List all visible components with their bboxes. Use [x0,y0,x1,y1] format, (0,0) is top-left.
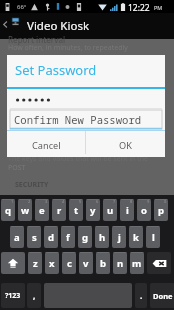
staticText: The keys and values that will be sent in… [8,154,149,164]
button[interactable]: x [45,252,59,274]
staticText: 66° [17,3,27,11]
staticText: Done [153,291,173,301]
staticText: 2 [28,199,31,204]
staticText: 3 [45,199,48,204]
staticText: e [39,204,45,217]
staticText: 9 [147,199,150,204]
staticText: 12:22 [128,2,150,14]
staticText: . [140,290,143,301]
staticText: 1 [11,199,14,204]
button[interactable]: e [35,199,49,221]
staticText: d [48,231,55,244]
staticText: o [141,204,147,217]
button[interactable]: z [28,252,42,274]
button[interactable]: v [79,252,93,274]
staticText: Video Kiosk [27,18,90,34]
button[interactable]: a [10,226,24,248]
staticText: z [33,257,38,270]
button[interactable]: b [96,252,110,274]
button[interactable]: , [27,283,41,308]
button[interactable]: q [1,199,15,221]
button[interactable]: d [44,226,58,248]
staticText: 5 [79,199,82,204]
button[interactable]: Delete [147,252,171,274]
staticText: q [5,204,12,217]
button[interactable]: r [52,199,66,221]
button[interactable]: n [113,252,127,274]
button[interactable]: t [69,199,83,221]
button[interactable]: OK [86,134,165,157]
staticText: x [49,257,55,270]
staticText: l [152,231,155,244]
staticText: a [14,231,20,244]
button[interactable]: o [137,199,151,221]
button[interactable]: l [146,226,160,248]
button[interactable]: g [78,226,92,248]
staticText: s [32,231,37,244]
staticText: Report interval [8,34,66,45]
staticText: n [117,257,124,270]
staticText: g [82,231,89,244]
button[interactable]: u [103,199,117,221]
button[interactable]: m [130,252,144,274]
staticText: 0 [164,199,167,204]
button[interactable]: k [129,226,143,248]
staticText: POST [8,163,26,173]
staticText: w [21,204,30,217]
staticText: i [126,204,129,217]
staticText: Confirm New Password [14,113,142,127]
staticText: t [74,204,79,217]
button[interactable]: p [154,199,168,221]
button[interactable]: j [112,226,126,248]
staticText: y [90,204,96,217]
button[interactable]: Cancel [7,134,85,157]
button[interactable]: Navigate up [0,16,10,33]
staticText: m [132,257,142,270]
staticText: 4 [62,199,65,204]
button[interactable]: w [18,199,32,221]
staticText: SECURITY [15,180,49,190]
staticText: r [57,204,62,217]
staticText: u [107,204,114,217]
button[interactable]: s [27,226,41,248]
button[interactable]: y [86,199,100,221]
staticText: 7 [113,199,116,204]
button[interactable]: ?123 [1,283,25,308]
button[interactable]: Shift [1,252,25,274]
staticText: How often, in minutes, to repeatedly [8,43,128,53]
staticText: p [158,204,165,217]
staticText: ?123 [5,291,21,301]
staticText: c [67,257,72,270]
staticText: v [83,257,89,270]
staticText: , [33,290,36,301]
button[interactable]: i [120,199,134,221]
staticText: OK [119,139,132,152]
staticText: j [118,231,121,244]
staticText: Cancel [32,139,61,152]
staticText: 6 [96,199,99,204]
staticText: h [99,231,106,244]
staticText: k [133,231,139,244]
staticText: b [100,257,107,270]
button[interactable]: h [95,226,109,248]
staticText: f [66,231,70,244]
button[interactable]: c [62,252,76,274]
staticText: 8 [130,199,133,204]
staticText: Set Password [15,61,97,79]
button[interactable]: Done [150,283,174,308]
button[interactable]: . [135,283,147,308]
staticText: PM [154,4,163,11]
button[interactable]: f [61,226,75,248]
